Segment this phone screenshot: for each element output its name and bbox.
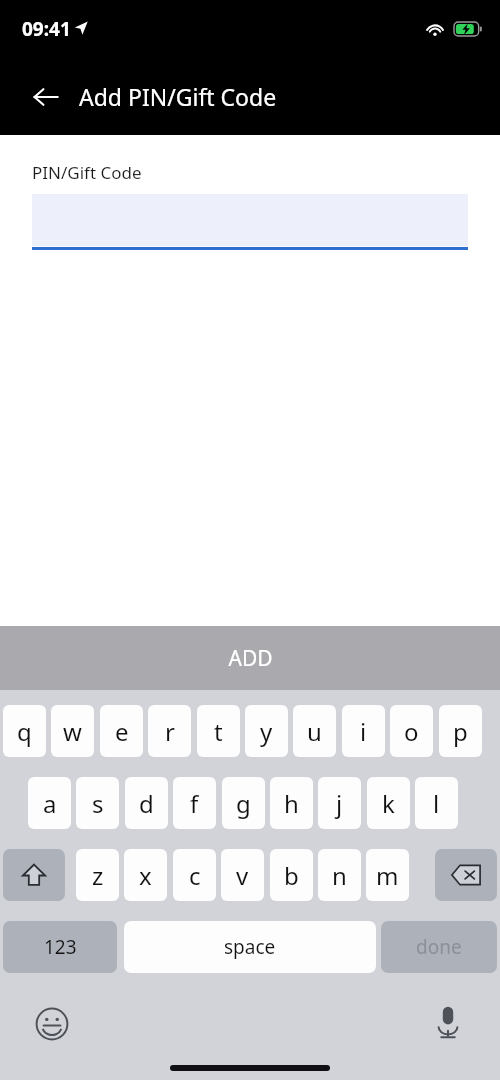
button[interactable]: r <box>148 705 191 757</box>
button[interactable]: x <box>124 849 167 901</box>
button[interactable]: b <box>270 849 313 901</box>
button[interactable]: done <box>381 921 497 973</box>
button[interactable]: m <box>366 849 409 901</box>
staticText: PIN/Gift Code <box>32 161 142 184</box>
staticText: u <box>307 715 322 748</box>
button[interactable]: Backspace <box>435 849 497 901</box>
button[interactable]: c <box>173 849 216 901</box>
button[interactable]: g <box>222 777 265 829</box>
button[interactable]: t <box>197 705 240 757</box>
button[interactable]: y <box>245 705 288 757</box>
button[interactable]: d <box>125 777 168 829</box>
staticText: done <box>416 934 462 960</box>
button[interactable]: o <box>390 705 433 757</box>
button[interactable]: q <box>3 705 46 757</box>
button[interactable]: u <box>293 705 336 757</box>
button[interactable]: i <box>342 705 385 757</box>
staticText: o <box>404 715 419 748</box>
staticText: e <box>115 715 129 748</box>
button[interactable]: Shift <box>3 849 65 901</box>
staticText: k <box>382 787 395 820</box>
button[interactable]: v <box>221 849 264 901</box>
staticText: j <box>336 787 343 820</box>
staticText: Add PIN/Gift Code <box>79 81 277 112</box>
staticText: a <box>43 787 57 820</box>
staticText: v <box>236 859 249 892</box>
button[interactable]: k <box>367 777 410 829</box>
staticText: n <box>332 859 347 892</box>
button[interactable]: j <box>318 777 361 829</box>
button[interactable]: h <box>270 777 313 829</box>
staticText: c <box>189 859 201 892</box>
staticText: l <box>433 787 440 820</box>
button[interactable]: Back <box>24 75 68 119</box>
staticText: 123 <box>44 934 77 960</box>
staticText: b <box>284 859 299 892</box>
staticText: t <box>214 715 223 748</box>
staticText: h <box>284 787 299 820</box>
staticText: q <box>17 715 32 748</box>
staticText: g <box>236 787 251 820</box>
staticText: w <box>63 715 82 748</box>
button[interactable]: Emoji <box>30 1002 74 1046</box>
button[interactable]: z <box>76 849 119 901</box>
staticText: x <box>139 859 152 892</box>
button[interactable]: Voice input <box>426 1000 470 1044</box>
staticText: z <box>92 859 104 892</box>
button[interactable]: s <box>76 777 119 829</box>
button[interactable]: n <box>318 849 361 901</box>
staticText: m <box>376 859 399 892</box>
staticText: ADD <box>228 644 273 673</box>
staticText: f <box>190 787 199 820</box>
staticText: s <box>92 787 104 820</box>
button[interactable]: p <box>439 705 482 757</box>
staticText: y <box>260 715 273 748</box>
button[interactable] <box>32 194 468 250</box>
button[interactable]: space <box>124 921 376 973</box>
staticText: d <box>139 787 154 820</box>
button[interactable]: e <box>100 705 143 757</box>
staticText: p <box>453 715 468 748</box>
button[interactable]: a <box>28 777 71 829</box>
button[interactable]: w <box>51 705 94 757</box>
button[interactable]: l <box>415 777 458 829</box>
button[interactable]: f <box>173 777 216 829</box>
staticText: i <box>360 715 367 748</box>
staticText: 09:41 <box>22 16 71 42</box>
staticText: space <box>224 934 276 960</box>
staticText: r <box>165 715 175 748</box>
button[interactable]: 123 <box>3 921 117 973</box>
button[interactable]: ADD <box>0 626 500 690</box>
